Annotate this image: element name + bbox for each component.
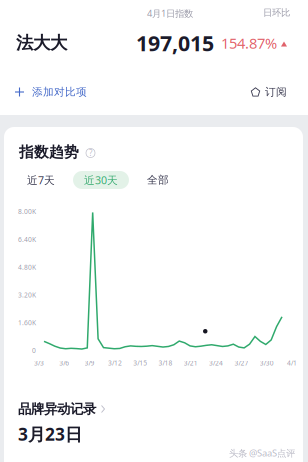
staticText: 0 [32,346,36,355]
button[interactable]: 添加对比项 [0,79,102,105]
staticText: 3.20K [18,290,36,299]
staticText: 头条 @SaaS点评 [229,447,295,459]
staticText: 3/27 [234,359,248,367]
staticText: 3/9 [85,359,95,367]
staticText: 8.00K [18,207,36,216]
staticText: 154.87% [221,33,277,53]
staticText: 日环比 [263,7,290,18]
staticText: 4.80K [18,263,36,272]
staticText: 3/15 [133,359,147,367]
staticText: 4月1日指数 [147,7,193,19]
staticText: 指数趋势 [19,143,79,161]
staticText: 3月23日 [18,422,82,445]
staticText: 6.40K [18,235,36,244]
button[interactable]: 近7天 [16,171,66,189]
staticText: 法大大 [16,32,67,54]
staticText: 品牌异动记录 [18,401,96,417]
staticText: 3/3 [34,359,44,367]
button[interactable]: 订阅 [235,79,308,105]
button[interactable]: 近30天 [73,171,129,189]
button[interactable]: 全部 [136,171,180,189]
staticText: 3/30 [260,359,274,367]
staticText: 4/1 [287,359,297,367]
staticText: 近30天 [84,173,118,187]
button[interactable]: 品牌异动记录 [4,397,303,421]
staticText: ? [89,148,92,158]
staticText: 订阅 [265,85,287,98]
staticText: 3/24 [209,359,223,367]
staticText: 197,015 [136,29,214,57]
staticText: 3/18 [158,359,172,367]
staticText: 3/12 [108,359,122,367]
staticText: 近7天 [27,173,55,187]
staticText: 3/6 [59,359,69,367]
staticText: 1.60K [18,318,36,327]
staticText: 3/21 [184,359,198,367]
staticText: 添加对比项 [32,85,87,98]
staticText: 全部 [147,173,169,186]
